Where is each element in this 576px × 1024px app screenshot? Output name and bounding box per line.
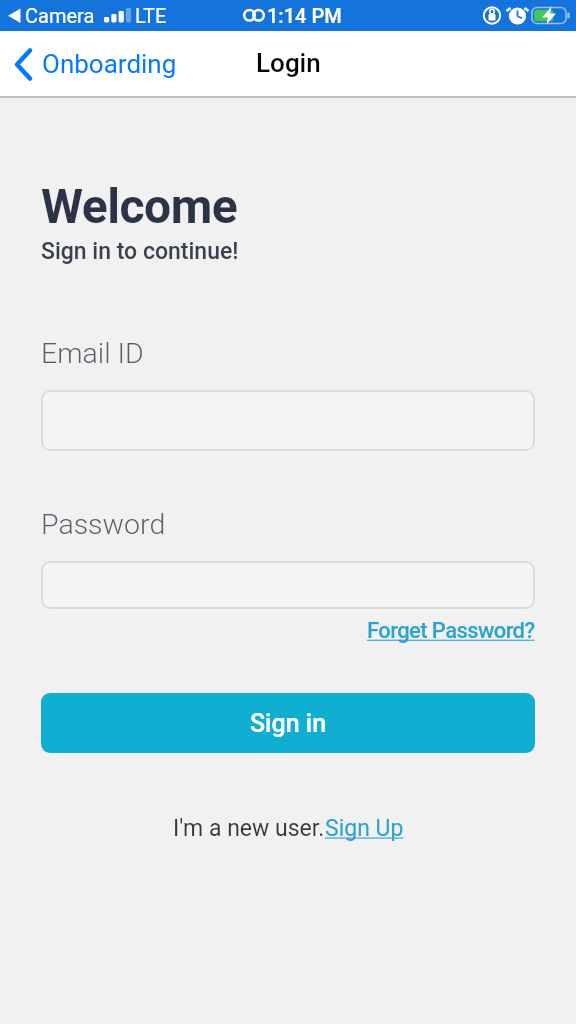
staticText: Email ID — [41, 337, 144, 370]
button[interactable]: Camera — [0, 0, 576, 31]
button[interactable] — [41, 561, 535, 609]
staticText: Welcome — [41, 178, 238, 234]
staticText: Sign Up — [325, 815, 404, 842]
button[interactable]: Sign Up — [325, 815, 404, 842]
staticText: Onboarding — [42, 49, 177, 79]
staticText: Camera — [25, 4, 95, 27]
staticText: I'm a new user. — [173, 815, 325, 842]
button[interactable]: Forget Password? — [367, 618, 535, 644]
staticText: Login — [256, 48, 321, 78]
staticText: Forget Password? — [367, 618, 535, 644]
staticText: LTE — [135, 4, 167, 27]
staticText: Sign in to continue! — [41, 238, 239, 265]
staticText: 1:14 PM — [267, 4, 342, 27]
staticText: Password — [41, 508, 166, 541]
button[interactable] — [41, 390, 535, 451]
staticText: Sign in — [250, 709, 327, 738]
button[interactable]: Sign in — [41, 693, 535, 753]
button[interactable]: Onboarding — [10, 43, 185, 85]
